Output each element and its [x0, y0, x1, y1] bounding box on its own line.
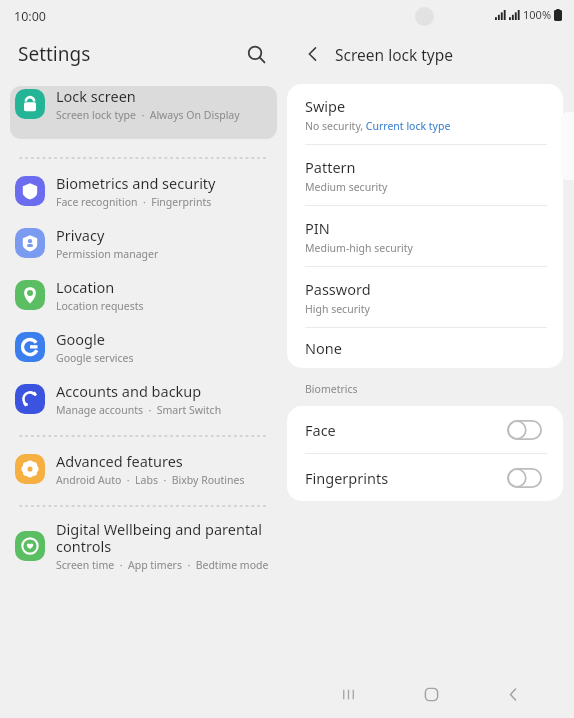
- button[interactable]: Back: [492, 673, 534, 715]
- button[interactable]: Password: [287, 267, 563, 327]
- button[interactable]: Digital Wellbeing and parental controls: [0, 519, 287, 572]
- staticText: Lock screen: [56, 86, 136, 106]
- button[interactable]: Lock screen: [10, 86, 277, 139]
- button[interactable]: Google: [0, 329, 287, 365]
- staticText: 10:00: [14, 8, 46, 25]
- button[interactable]: Location: [0, 277, 287, 313]
- button[interactable]: Privacy: [0, 225, 287, 261]
- button[interactable]: Home: [410, 673, 452, 715]
- staticText: Swipe: [305, 96, 346, 116]
- staticText: Face: [305, 420, 336, 440]
- button[interactable]: Biometrics and security: [0, 173, 287, 209]
- button[interactable]: Face: [287, 406, 563, 453]
- button[interactable]: Accounts and backup: [0, 381, 287, 417]
- staticText: Android Auto · Labs · Bixby Routines: [56, 473, 245, 487]
- button[interactable]: Search: [239, 37, 273, 71]
- staticText: 100%: [523, 7, 552, 22]
- button[interactable]: Advanced features: [0, 451, 287, 487]
- staticText: Settings: [18, 41, 91, 67]
- staticText: Screen lock type · Always On Display: [56, 108, 240, 122]
- staticText: Google: [56, 329, 105, 349]
- staticText: Google services: [56, 351, 134, 365]
- staticText: High security: [305, 302, 370, 316]
- button[interactable]: Recents: [327, 673, 369, 715]
- staticText: Location: [56, 277, 115, 297]
- staticText: Manage accounts · Smart Switch: [56, 403, 222, 417]
- staticText: Screen time · App timers · Bedtime mode: [56, 558, 269, 572]
- staticText: Fingerprints: [305, 468, 389, 488]
- staticText: Screen lock type: [335, 44, 454, 65]
- staticText: Privacy: [56, 225, 105, 245]
- staticText: Digital Wellbeing and parental controls: [56, 519, 262, 556]
- button[interactable]: PIN: [287, 206, 563, 266]
- staticText: Advanced features: [56, 451, 183, 471]
- staticText: Permission manager: [56, 247, 159, 261]
- staticText: Medium security: [305, 180, 388, 194]
- staticText: Location requests: [56, 299, 144, 313]
- staticText: PIN: [305, 218, 330, 238]
- staticText: No security, Current lock type: [305, 119, 451, 133]
- button[interactable]: None: [287, 328, 563, 368]
- button[interactable]: Fingerprints: [287, 454, 563, 501]
- staticText: Face recognition · Fingerprints: [56, 195, 212, 209]
- staticText: Password: [305, 279, 371, 299]
- staticText: Medium-high security: [305, 241, 413, 255]
- staticText: Accounts and backup: [56, 381, 202, 401]
- staticText: Biometrics and security: [56, 173, 216, 193]
- staticText: Biometrics: [305, 382, 358, 396]
- button[interactable]: Pattern: [287, 145, 563, 205]
- staticText: Pattern: [305, 157, 356, 177]
- staticText: None: [305, 338, 342, 358]
- button[interactable]: Swipe: [287, 84, 563, 144]
- button[interactable]: Back: [297, 38, 329, 70]
